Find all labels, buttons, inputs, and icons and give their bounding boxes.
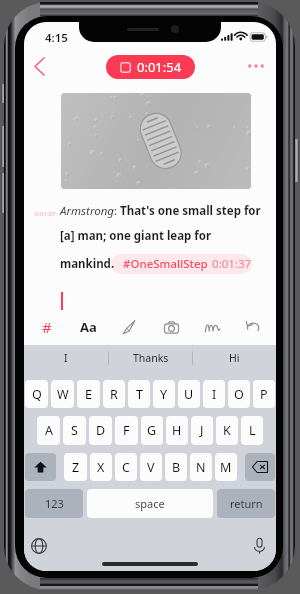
button[interactable]: D — [89, 416, 112, 445]
button[interactable]: W — [51, 380, 74, 408]
button[interactable]: O — [228, 380, 250, 408]
button[interactable]: H — [166, 416, 188, 445]
staticText: T — [136, 386, 143, 403]
button[interactable]: V — [140, 453, 162, 481]
staticText: I — [64, 351, 68, 365]
button[interactable]: Shift — [25, 453, 56, 481]
button[interactable]: 0:01:54 — [106, 55, 195, 79]
staticText: Armstrong: That's one small step for — [60, 203, 261, 219]
staticText: X — [97, 459, 105, 476]
staticText: space — [135, 496, 165, 511]
staticText: N — [196, 459, 206, 476]
button[interactable]: I — [203, 380, 225, 408]
button[interactable]: N — [190, 453, 212, 481]
staticText: 0:01:37 — [35, 210, 56, 218]
button[interactable]: Photo attachment — [61, 93, 251, 189]
button[interactable]: R — [103, 380, 125, 408]
button[interactable]: S — [63, 416, 86, 445]
staticText: B — [172, 459, 181, 476]
button[interactable]: Thanks — [109, 345, 192, 371]
button[interactable]: Y — [153, 380, 175, 408]
staticText: M — [220, 459, 232, 476]
staticText: Y — [160, 386, 168, 403]
button[interactable]: I — [24, 345, 108, 371]
staticText: 0:01:54 — [137, 58, 182, 76]
button[interactable]: K — [216, 416, 238, 445]
staticText: # — [42, 317, 52, 337]
button[interactable]: M — [215, 453, 237, 481]
button[interactable]: Back — [26, 50, 52, 82]
staticText: G — [147, 422, 157, 439]
button[interactable]: Backspace — [245, 453, 275, 481]
button[interactable]: P — [253, 380, 275, 408]
button[interactable]: L — [241, 416, 263, 445]
staticText: Q — [32, 386, 42, 403]
button[interactable]: E — [77, 380, 100, 408]
button[interactable]: C — [115, 453, 137, 481]
button[interactable]: #OneSmallStep — [123, 256, 208, 272]
button[interactable]: return — [217, 489, 275, 518]
button[interactable]: Camera — [158, 314, 184, 340]
staticText: K — [223, 422, 231, 439]
button[interactable]: A — [37, 416, 60, 445]
button[interactable]: Z — [64, 453, 87, 481]
staticText: J — [200, 422, 204, 439]
button[interactable]: T — [128, 380, 150, 408]
button[interactable]: B — [165, 453, 187, 481]
staticText: Thanks — [133, 351, 169, 365]
staticText: I — [212, 386, 217, 403]
button[interactable]: Change keyboard — [24, 531, 54, 561]
staticText: U — [184, 386, 194, 403]
button[interactable]: Hi — [193, 345, 276, 371]
button[interactable]: F — [115, 416, 138, 445]
staticText: 4:15 — [45, 30, 68, 46]
button[interactable]: Q — [25, 380, 48, 408]
button[interactable]: Undo — [240, 314, 266, 340]
button[interactable]: Dictation — [244, 531, 274, 561]
staticText: L — [249, 422, 256, 439]
staticText: H — [172, 422, 182, 439]
button[interactable]: Hashtag — [34, 314, 60, 340]
button[interactable]: Highlighter — [116, 314, 142, 340]
staticText: C — [122, 459, 130, 476]
staticText: D — [96, 422, 106, 439]
button[interactable]: U — [178, 380, 200, 408]
button[interactable]: J — [191, 416, 213, 445]
staticText: V — [147, 459, 155, 476]
staticText: W — [57, 386, 69, 403]
staticText: mankind. — [60, 256, 115, 272]
staticText: F — [123, 422, 130, 439]
button[interactable]: 123 — [25, 489, 83, 518]
staticText: P — [260, 386, 268, 403]
button[interactable]: X — [90, 453, 112, 481]
button[interactable]: Scribble — [199, 314, 225, 340]
staticText: S — [71, 422, 78, 439]
staticText: Aa — [80, 318, 97, 336]
button[interactable]: space — [87, 489, 213, 518]
staticText: [a] man; one giant leap for — [60, 228, 212, 244]
staticText: A — [45, 422, 53, 439]
staticText: Z — [72, 459, 80, 476]
button[interactable]: More options — [240, 53, 272, 78]
button[interactable]: Text style — [75, 314, 101, 340]
button[interactable]: G — [141, 416, 163, 445]
staticText: E — [85, 386, 92, 403]
staticText: return — [230, 496, 263, 511]
staticText: Hi — [229, 351, 240, 365]
staticText: O — [234, 386, 244, 403]
staticText: R — [110, 386, 118, 403]
staticText: 123 — [45, 496, 64, 511]
staticText: 0:01:37 — [212, 256, 252, 272]
